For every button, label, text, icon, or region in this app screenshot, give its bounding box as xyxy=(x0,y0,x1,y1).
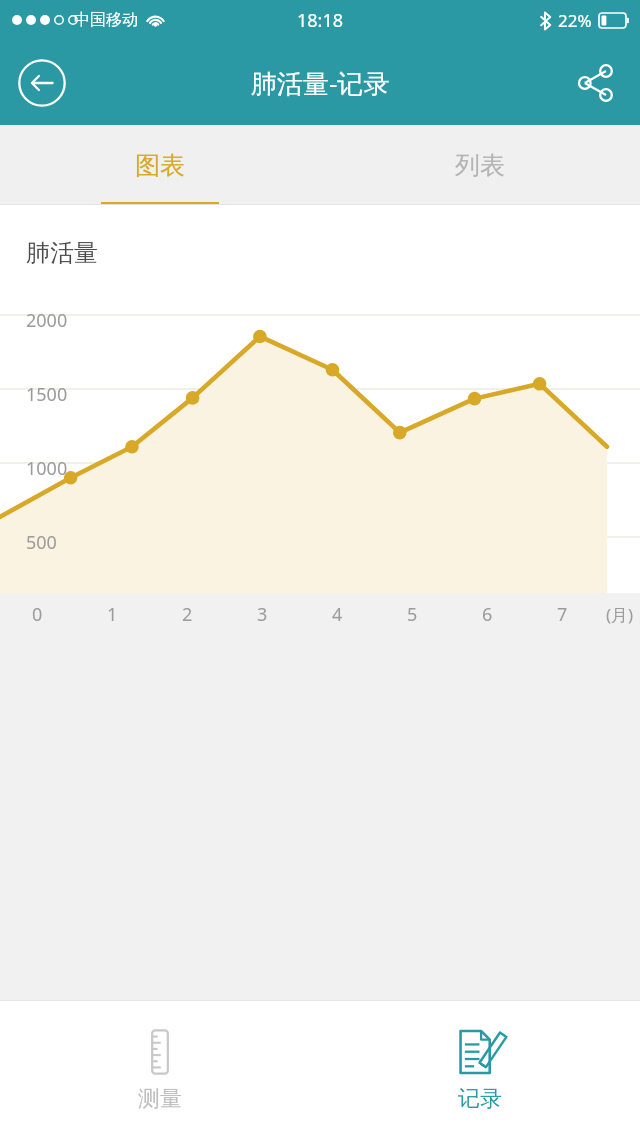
staticText: 2000 xyxy=(26,308,68,333)
staticText: 列表 xyxy=(455,150,505,181)
staticText: 2 xyxy=(182,602,193,627)
staticText: 1 xyxy=(107,602,118,627)
staticText: 6 xyxy=(482,602,493,627)
staticText: 图表 xyxy=(135,150,185,181)
staticText: (月) xyxy=(606,603,634,626)
staticText: 记录 xyxy=(458,1085,502,1113)
staticText: 中国移动 xyxy=(74,10,138,30)
staticText: 1500 xyxy=(26,382,68,407)
staticText: 肺活量-记录 xyxy=(251,65,390,101)
button[interactable]: 测量 xyxy=(0,1001,320,1136)
staticText: 1000 xyxy=(26,456,68,481)
button[interactable]: 记录 xyxy=(320,1001,640,1136)
button[interactable]: 图表 xyxy=(0,125,320,205)
button[interactable]: Share xyxy=(568,55,624,111)
staticText: 18:18 xyxy=(297,8,344,33)
staticText: 肺活量 xyxy=(26,238,98,268)
staticText: 3 xyxy=(257,602,268,627)
staticText: 5 xyxy=(407,602,418,627)
staticText: 22% xyxy=(558,9,592,32)
button[interactable]: Back xyxy=(14,55,70,111)
staticText: 7 xyxy=(557,602,568,627)
staticText: 测量 xyxy=(138,1085,182,1113)
button[interactable]: 列表 xyxy=(320,125,640,205)
staticText: 4 xyxy=(332,602,343,627)
staticText: 0 xyxy=(32,602,43,627)
staticText: 500 xyxy=(26,530,57,555)
